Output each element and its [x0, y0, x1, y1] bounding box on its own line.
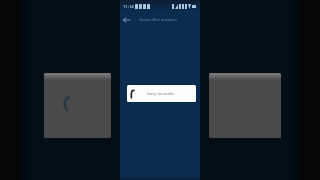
button[interactable]	[44, 73, 111, 138]
staticText: Virtual office extension	[139, 17, 177, 22]
button[interactable]	[209, 73, 281, 138]
button[interactable]: Sorry, no results	[127, 85, 196, 102]
button[interactable]: Back	[122, 15, 131, 24]
staticText: 11:14	[123, 4, 134, 9]
staticText: Sorry, no results	[147, 91, 174, 96]
